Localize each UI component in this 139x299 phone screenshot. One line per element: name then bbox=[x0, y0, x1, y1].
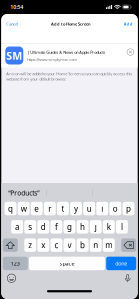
button[interactable]: q bbox=[5, 202, 16, 215]
staticText: n bbox=[93, 240, 98, 250]
staticText: An icon will be added to your Home Scree… bbox=[6, 71, 132, 82]
button[interactable]: w bbox=[18, 202, 30, 215]
staticText: a bbox=[15, 221, 19, 232]
staticText: v bbox=[67, 240, 71, 250]
staticText: | Ultimate Guides & News on Apple Produc… bbox=[27, 49, 105, 55]
button[interactable]: n bbox=[90, 238, 102, 252]
button[interactable]: l bbox=[116, 220, 128, 234]
staticText: z bbox=[28, 240, 32, 250]
staticText: w bbox=[21, 203, 27, 214]
button[interactable]: m bbox=[103, 238, 115, 252]
button[interactable]: t bbox=[57, 202, 69, 215]
staticText: j bbox=[95, 221, 97, 232]
staticText: 10:54 bbox=[10, 3, 23, 11]
staticText: i bbox=[101, 203, 103, 214]
staticText: d bbox=[41, 221, 46, 232]
button[interactable]: h bbox=[77, 220, 88, 234]
staticText: g bbox=[67, 221, 72, 232]
button[interactable]: e bbox=[31, 202, 43, 215]
staticText: p bbox=[126, 203, 131, 214]
button[interactable]: done bbox=[106, 257, 136, 270]
button[interactable]: d bbox=[37, 220, 49, 234]
staticText: https://www.simplymac.com bbox=[27, 57, 77, 62]
staticText: y bbox=[74, 203, 78, 214]
button[interactable]: c bbox=[50, 238, 62, 252]
button[interactable]: x bbox=[37, 238, 49, 252]
staticText: SM bbox=[6, 48, 22, 63]
button[interactable]: k bbox=[103, 220, 115, 234]
staticText: b bbox=[80, 240, 85, 250]
button[interactable]: p bbox=[122, 202, 134, 215]
button[interactable]: y bbox=[70, 202, 82, 215]
staticText: s bbox=[28, 221, 32, 232]
button[interactable]: a bbox=[11, 220, 23, 234]
button[interactable]: r bbox=[44, 202, 56, 215]
button[interactable]: i bbox=[96, 202, 108, 215]
button[interactable]: g bbox=[63, 220, 75, 234]
staticText: k bbox=[107, 221, 111, 232]
staticText: Add to Home Screen bbox=[51, 21, 91, 27]
staticText: 123 bbox=[11, 260, 20, 267]
button[interactable]: 123 bbox=[3, 257, 28, 270]
staticText: e bbox=[34, 203, 39, 214]
staticText: u bbox=[87, 203, 92, 214]
button[interactable]: b bbox=[77, 238, 88, 252]
staticText: q bbox=[8, 203, 13, 214]
button[interactable]: Delete bbox=[121, 238, 136, 252]
staticText: o bbox=[113, 203, 118, 214]
staticText: space bbox=[59, 260, 74, 267]
staticText: t bbox=[61, 203, 64, 214]
button[interactable]: z bbox=[24, 238, 36, 252]
button[interactable]: Cancel bbox=[4, 19, 20, 29]
button[interactable]: Emoji keyboard bbox=[7, 274, 16, 282]
staticText: x bbox=[41, 240, 45, 250]
button[interactable]: j bbox=[90, 220, 102, 234]
staticText: r bbox=[48, 203, 51, 214]
button[interactable]: “Products” bbox=[1, 186, 46, 200]
button[interactable]: f bbox=[50, 220, 62, 234]
staticText: m bbox=[105, 240, 112, 250]
button[interactable]: Dictation bbox=[124, 274, 132, 283]
button[interactable]: space bbox=[29, 257, 105, 270]
staticText: done bbox=[115, 260, 127, 267]
button[interactable]: s bbox=[24, 220, 36, 234]
staticText: f bbox=[55, 221, 58, 232]
button[interactable]: u bbox=[83, 202, 95, 215]
button[interactable]: Shift bbox=[3, 238, 18, 252]
staticText: Cancel bbox=[6, 21, 18, 27]
staticText: c bbox=[54, 240, 58, 250]
staticText: Add bbox=[124, 21, 133, 27]
staticText: “Products” bbox=[8, 188, 39, 197]
button[interactable]: v bbox=[63, 238, 75, 252]
staticText: h bbox=[80, 221, 85, 232]
button[interactable]: o bbox=[109, 202, 121, 215]
staticText: l bbox=[121, 221, 123, 232]
button[interactable]: Add bbox=[122, 19, 135, 29]
